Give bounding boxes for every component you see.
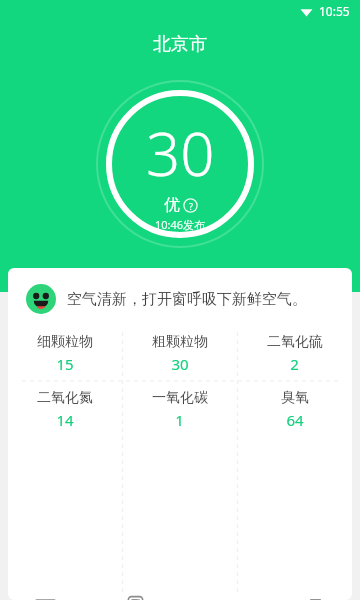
staticText: 二氧化氮 <box>37 389 93 407</box>
staticText: 臭氧 <box>281 389 309 407</box>
staticText: ? <box>189 200 193 212</box>
button[interactable]: 粗颗粒物 <box>122 326 237 381</box>
button[interactable]: 一氧化碳 <box>122 382 237 437</box>
staticText: 10:46发布 <box>155 217 206 232</box>
staticText: 空气清新，打开窗呼吸下新鲜空气。 <box>67 290 338 309</box>
staticText: 10:55 <box>319 3 350 19</box>
button[interactable]: 空气质量说明 <box>183 198 198 213</box>
staticText: 30 <box>171 354 189 374</box>
staticText: 15 <box>56 354 74 374</box>
button[interactable]: 细颗粒物 <box>8 326 122 381</box>
staticText: 细颗粒物 <box>37 333 93 351</box>
staticText: 二氧化硫 <box>267 333 323 351</box>
staticText: 优 <box>164 195 180 215</box>
staticText: 1 <box>175 410 184 430</box>
staticText: 2 <box>290 354 299 374</box>
button[interactable]: 二氧化氮 <box>8 382 122 437</box>
staticText: 粗颗粒物 <box>152 333 208 351</box>
button[interactable]: 空气清新，打开窗呼吸下新鲜空气。 <box>8 268 352 326</box>
staticText: 一氧化碳 <box>152 389 208 407</box>
staticText: 30 <box>146 112 215 194</box>
button[interactable]: 二氧化硫 <box>237 326 352 381</box>
staticText: 14 <box>56 410 74 430</box>
staticText: 北京市 <box>153 33 207 56</box>
button[interactable]: 臭氧 <box>237 382 352 437</box>
staticText: 64 <box>286 410 304 430</box>
